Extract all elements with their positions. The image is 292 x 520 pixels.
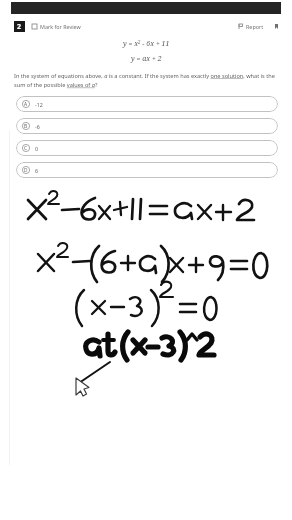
staticText: -6 <box>35 123 40 130</box>
button[interactable]: Bookmark <box>272 22 281 31</box>
staticText: 6 <box>35 167 39 174</box>
staticText: -12 <box>35 101 43 108</box>
button[interactable]: Report <box>238 23 264 30</box>
staticText: y = x2 − 6x + 11 <box>123 39 170 49</box>
button[interactable]: C <box>16 140 278 156</box>
staticText: B <box>24 123 28 130</box>
staticText: A <box>24 101 28 108</box>
button[interactable]: A <box>16 96 278 112</box>
staticText: 0 <box>35 145 39 152</box>
button[interactable]: B <box>16 118 278 134</box>
staticText: D <box>24 167 28 174</box>
button[interactable]: D <box>16 162 278 178</box>
staticText: C <box>24 145 28 152</box>
button[interactable]: Mark for Review <box>32 23 81 30</box>
staticText: Mark for Review <box>40 23 81 30</box>
staticText: y = ax + 2 <box>131 54 162 64</box>
staticText: 2 <box>17 22 22 32</box>
staticText: In the system of equations above, a is a… <box>14 72 278 89</box>
staticText: Report <box>246 23 264 30</box>
